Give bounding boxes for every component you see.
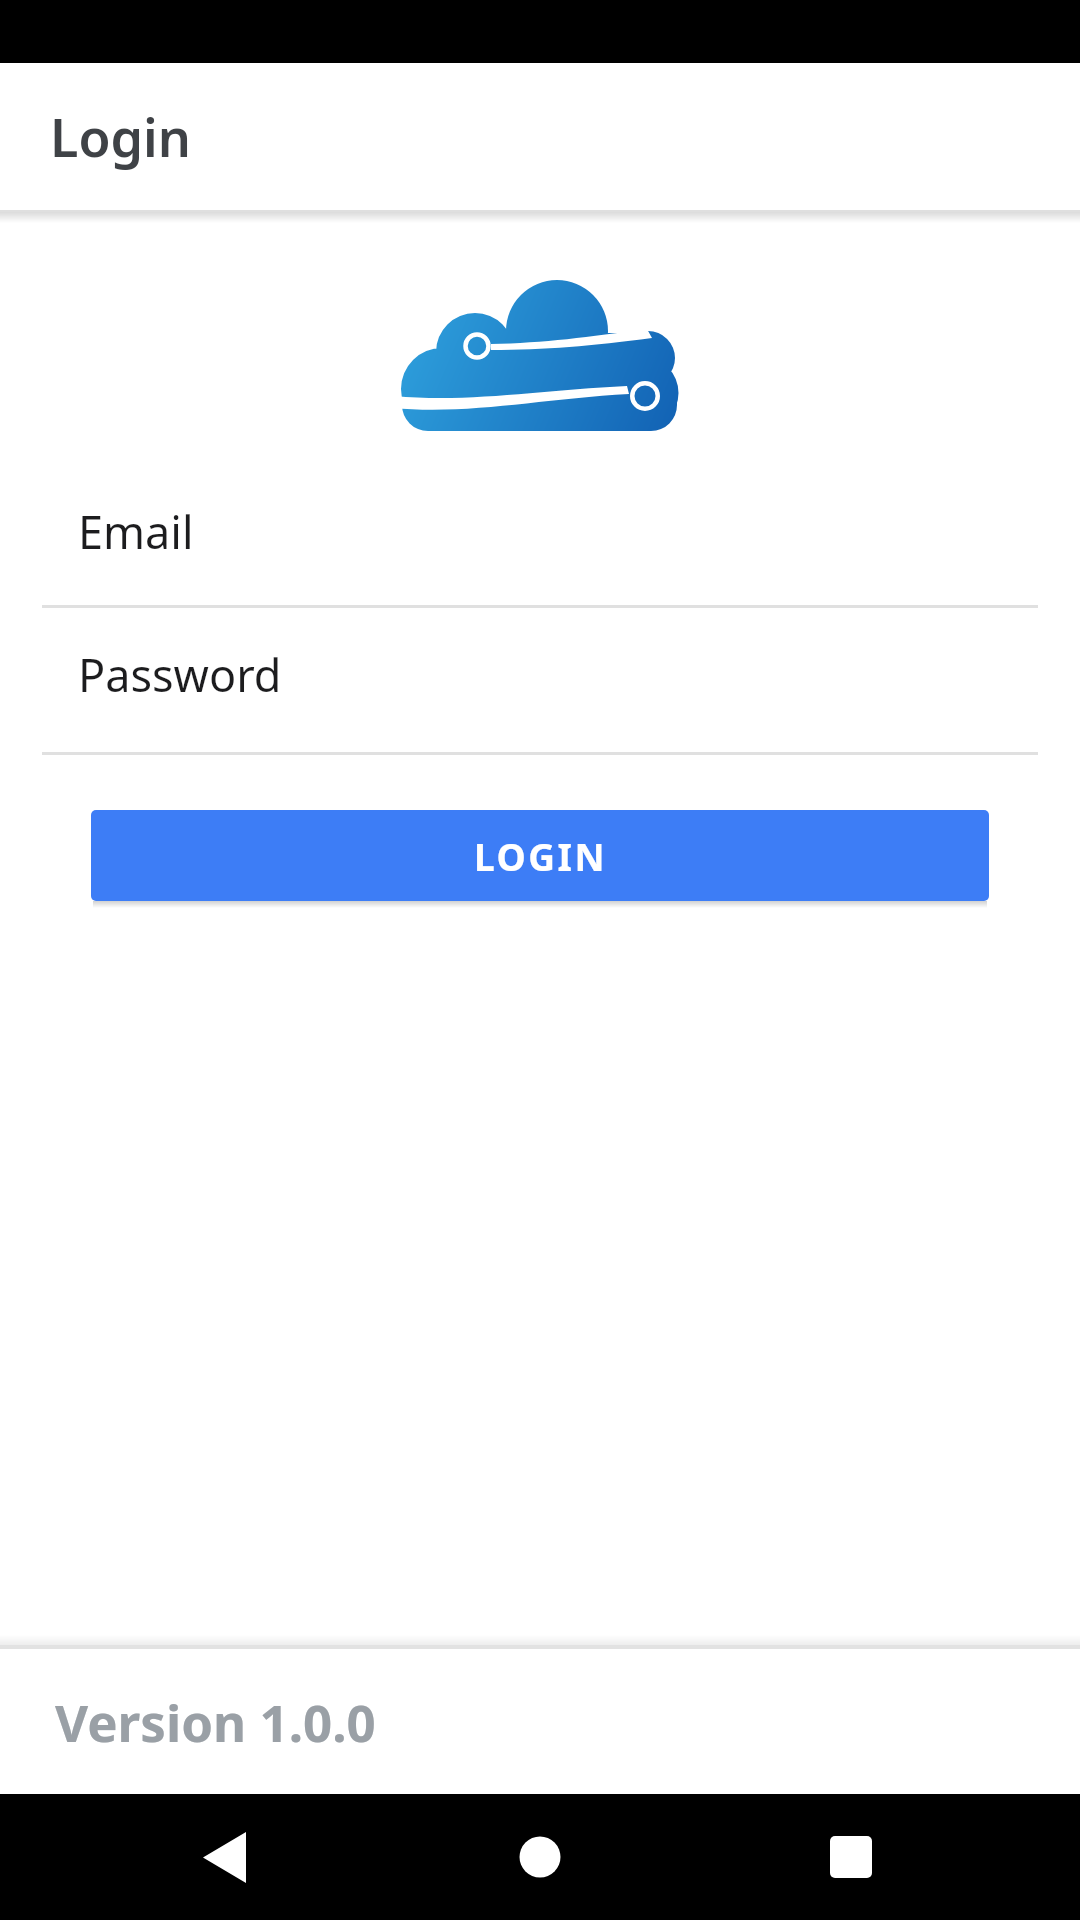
button[interactable]: LOGIN <box>91 810 989 901</box>
button[interactable]: Password <box>0 644 1080 755</box>
staticText: Email <box>78 501 194 562</box>
staticText: Password <box>78 644 282 705</box>
staticText: Version 1.0.0 <box>55 1687 376 1756</box>
button[interactable]: Email <box>0 501 1080 608</box>
staticText: LOGIN <box>474 831 607 881</box>
staticText: Login <box>50 101 191 172</box>
button[interactable] <box>788 1794 914 1920</box>
button[interactable] <box>161 1794 287 1920</box>
button[interactable] <box>477 1794 603 1920</box>
